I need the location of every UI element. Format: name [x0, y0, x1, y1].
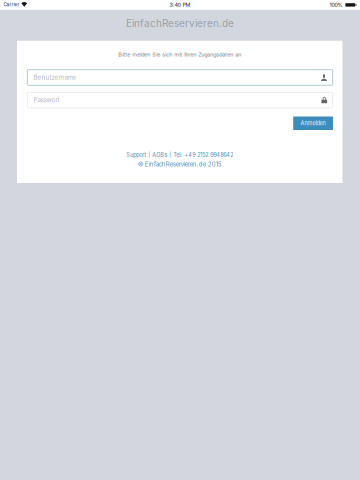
staticText: Anmelden — [301, 120, 326, 127]
button[interactable]: Anmelden — [293, 116, 333, 130]
staticText: Carrier — [3, 2, 19, 7]
staticText: 100% — [329, 2, 342, 8]
staticText: © EinfachReservieren.de 2015 — [138, 161, 222, 168]
staticText: Support | AGBs | Tel: +49 2152 9948642 — [126, 152, 233, 158]
staticText: Benutzername — [33, 74, 76, 81]
staticText: EinfachReservieren.de — [126, 17, 234, 29]
button[interactable]: Passwort — [27, 92, 333, 108]
button[interactable]: Support | AGBs | Tel: +49 2152 9948642 — [17, 152, 342, 158]
staticText: Bitte melden Sie sich mit Ihren Zugangsd… — [118, 51, 241, 58]
staticText: Passwort — [33, 96, 59, 104]
button[interactable]: Benutzername — [27, 70, 333, 85]
staticText: 3:40 PM — [169, 2, 190, 8]
